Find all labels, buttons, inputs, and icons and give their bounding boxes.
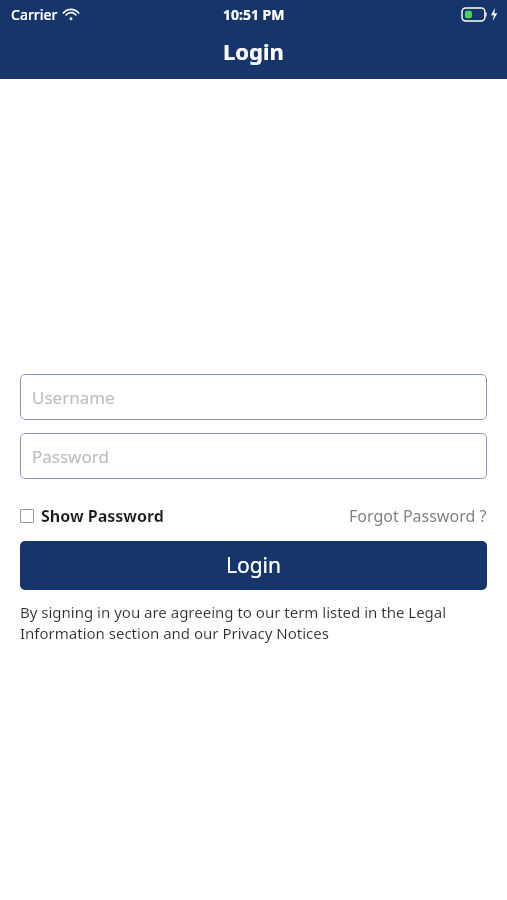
staticText: Carrier — [11, 5, 58, 24]
button[interactable]: Show Password — [20, 505, 168, 527]
staticText: Login — [226, 551, 282, 580]
button[interactable]: Password — [20, 433, 487, 479]
other: Wi-Fi signal — [64, 9, 78, 20]
staticText: Password — [32, 445, 109, 468]
staticText: Username — [32, 386, 115, 409]
other: Battery charging — [462, 8, 488, 21]
button[interactable]: Login — [20, 541, 487, 590]
staticText: 10:51 PM — [223, 5, 285, 24]
staticText: By signing in you are agreeing to our te… — [20, 602, 487, 644]
staticText: Login — [223, 36, 284, 66]
button[interactable]: Username — [20, 374, 487, 420]
button[interactable]: Forgot Password ? — [349, 505, 487, 527]
staticText: Forgot Password ? — [349, 505, 487, 527]
staticText: Show Password — [41, 505, 164, 527]
